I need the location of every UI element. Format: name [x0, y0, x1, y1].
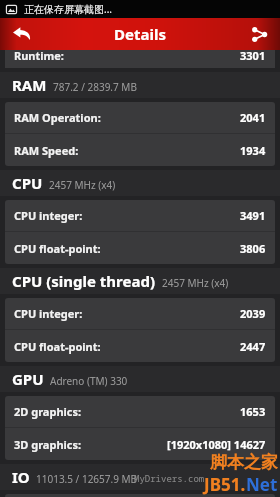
staticText: 1653	[240, 404, 266, 419]
staticText: 3D graphics:	[14, 437, 82, 452]
staticText: 正在保存屏幕截图...	[24, 2, 113, 16]
staticText: 2D graphics:	[14, 404, 82, 419]
button[interactable]: Storage I/O:	[5, 494, 275, 497]
staticText: CPU float-point:	[14, 339, 101, 354]
button[interactable]: Runtime:	[5, 50, 275, 68]
staticText: CPU	[12, 173, 43, 193]
staticText: 1934	[240, 143, 266, 158]
staticText: 3491	[240, 208, 266, 223]
button[interactable]: CPU integer:	[5, 298, 275, 330]
staticText: 2457 MHz (x4)	[162, 276, 229, 290]
button[interactable]: Share	[238, 18, 280, 50]
staticText: Net	[246, 473, 278, 496]
button[interactable]: RAM Speed:	[5, 134, 275, 166]
staticText: Adreno (TM) 330	[50, 374, 128, 388]
staticText: 2447	[240, 339, 266, 354]
staticText: JB51.	[204, 473, 246, 496]
staticText: RAM Operation:	[14, 110, 101, 125]
staticText: CPU float-point:	[14, 241, 101, 256]
staticText: RAM Speed:	[14, 143, 79, 158]
staticText: 787.2 / 2839.7 MB	[53, 80, 137, 94]
staticText: 脚本之家	[210, 452, 278, 473]
button[interactable]: Back	[0, 18, 44, 50]
button[interactable]: CPU float-point:	[5, 232, 275, 264]
staticText: Runtime:	[14, 48, 64, 63]
staticText: 3806	[240, 241, 266, 256]
staticText: RAM	[12, 75, 47, 95]
button[interactable]: 3D graphics:	[5, 428, 275, 460]
staticText: 2039	[240, 306, 266, 321]
staticText: CPU (single thread)	[12, 271, 156, 291]
button[interactable]: RAM Operation:	[5, 102, 275, 134]
staticText: 11013.5 / 12657.9 MB	[36, 472, 138, 486]
staticText: 2457 MHz (x4)	[49, 178, 116, 192]
staticText: CPU integer:	[14, 306, 83, 321]
staticText: IO	[12, 467, 30, 487]
staticText: GPU	[12, 369, 44, 389]
staticText: MyDrivers.com	[134, 472, 205, 484]
staticText: CPU integer:	[14, 208, 83, 223]
staticText: [1920x1080] 14627	[167, 437, 266, 452]
staticText: 2041	[240, 110, 266, 125]
button[interactable]: 2D graphics:	[5, 396, 275, 428]
staticText: 3301	[240, 48, 266, 63]
button[interactable]: CPU integer:	[5, 200, 275, 232]
staticText: Details	[114, 24, 166, 44]
button[interactable]: CPU float-point:	[5, 330, 275, 362]
